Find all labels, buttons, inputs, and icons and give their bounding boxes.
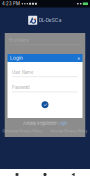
button[interactable]: Back — [63, 169, 83, 180]
button[interactable]: Login — [7, 54, 82, 62]
staticText: Consumer Privacy Policy — [2, 129, 42, 133]
staticText: First Name — [9, 38, 29, 43]
staticText: Already Registered? — [23, 121, 57, 126]
button[interactable]: Already Registered? — [23, 121, 67, 125]
staticText: Login — [10, 55, 23, 61]
staticText: × — [77, 55, 80, 61]
staticText: User Name — [12, 70, 33, 75]
button[interactable]: Home — [35, 169, 55, 180]
staticText: Provider Privacy Policy — [50, 129, 87, 133]
button[interactable]: Submit login — [41, 101, 48, 108]
button[interactable]: Consumer Privacy Policy — [2, 129, 42, 133]
staticText: DL-DeSCa — [39, 17, 62, 23]
staticText: ✓ — [43, 102, 47, 108]
staticText: Password — [12, 85, 30, 90]
button[interactable]: Provider Privacy Policy — [50, 129, 87, 133]
staticText: 4:23 PM — [2, 1, 20, 6]
button[interactable]: Recent apps — [7, 169, 27, 180]
staticText: Login — [58, 121, 67, 126]
